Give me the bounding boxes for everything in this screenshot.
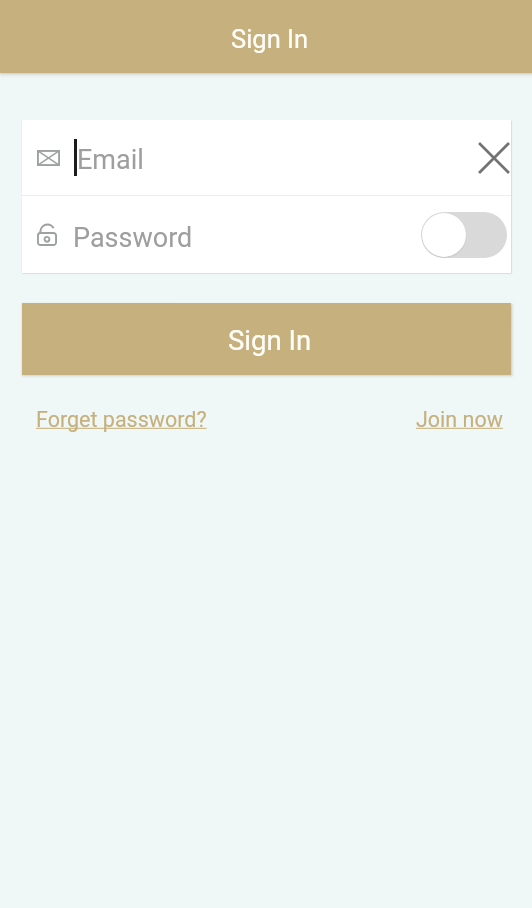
staticText: Join now [416, 407, 503, 432]
staticText: Email [77, 144, 144, 176]
button[interactable]: Join now [416, 405, 503, 434]
button[interactable]: Email [22, 120, 511, 195]
staticText: Sign In [228, 324, 312, 356]
button[interactable]: Sign In [22, 303, 511, 375]
button[interactable]: Clear email [479, 132, 509, 184]
staticText: Password [73, 222, 193, 254]
staticText: Forget password? [36, 407, 207, 432]
button[interactable]: Forget password? [36, 405, 207, 434]
staticText: Sign In [231, 24, 309, 54]
button[interactable]: Show password [421, 212, 507, 258]
button[interactable]: Password [22, 196, 511, 273]
